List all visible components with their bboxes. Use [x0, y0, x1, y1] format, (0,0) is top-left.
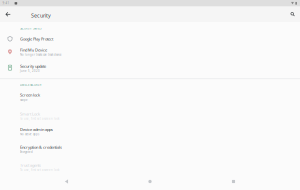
staticText: Trust agents: [20, 163, 41, 168]
staticText: Device admin apps: [20, 127, 53, 132]
staticText: Encrypted: [20, 150, 33, 154]
button[interactable]: Encryption & credentials: [0, 144, 300, 154]
staticText: DEVICE SECURITY: [20, 83, 42, 87]
staticText: Encryption & credentials: [20, 144, 62, 150]
button[interactable]: Back: [49, 176, 83, 186]
staticText: Find My Device: [20, 47, 47, 52]
staticText: SECURITY STATUS: [20, 27, 41, 30]
button[interactable]: Recent apps: [216, 176, 250, 186]
button[interactable]: Screen lock: [0, 92, 300, 102]
button[interactable]: Google Play Protect: [0, 36, 300, 42]
button[interactable]: Security update: [0, 64, 300, 73]
staticText: Google Play Protect: [20, 36, 53, 42]
button[interactable]: Search: [285, 7, 300, 22]
staticText: June 5, 2020: [20, 69, 40, 73]
button[interactable]: Device admin apps: [0, 127, 300, 136]
staticText: No active apps: [20, 132, 39, 136]
staticText: To use, first set a screen lock: [20, 168, 59, 172]
staticText: To use, first set a screen lock: [20, 117, 59, 120]
staticText: No longer tracks can track device: [20, 53, 62, 56]
staticText: Security: [31, 12, 51, 19]
staticText: Screen lock: [20, 92, 40, 98]
staticText: Smart Lock: [20, 111, 40, 117]
staticText: Swipe: [20, 98, 28, 102]
button[interactable]: Home: [133, 176, 167, 186]
button[interactable]: Find My Device: [0, 47, 300, 56]
staticText: 9:41: [2, 1, 9, 5]
button[interactable]: Back: [0, 7, 16, 22]
staticText: Security update: [20, 64, 46, 69]
